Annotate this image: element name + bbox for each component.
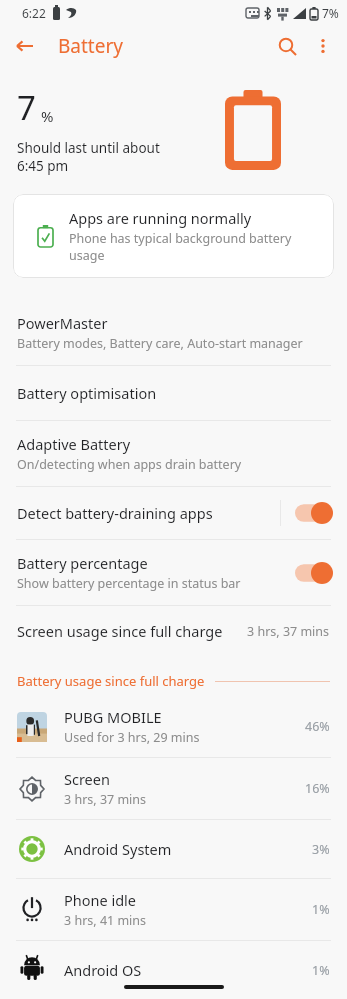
staticText: Battery usage since full charge: [17, 672, 205, 690]
staticText: Show battery percentage in status bar: [17, 575, 241, 592]
button[interactable]: More options: [305, 28, 341, 64]
button[interactable]: PowerMaster: [0, 300, 347, 365]
staticText: Battery percentage: [17, 553, 148, 573]
staticText: 1%: [312, 901, 330, 918]
button[interactable]: Android OS: [0, 941, 347, 999]
button[interactable]: Search: [269, 28, 305, 64]
staticText: Phone has typical background battery usa…: [69, 230, 326, 264]
staticText: Battery optimisation: [17, 383, 157, 403]
staticText: PUBG MOBILE: [64, 707, 162, 727]
staticText: Screen usage since full charge: [17, 621, 247, 641]
staticText: 6:45 pm: [17, 157, 69, 175]
staticText: Should last until about: [17, 139, 160, 157]
staticText: Adaptive Battery: [17, 434, 131, 454]
staticText: Phone idle: [64, 890, 136, 910]
staticText: 46%: [305, 718, 330, 735]
staticText: 7: [17, 85, 36, 130]
button[interactable]: Battery percentage: [0, 540, 347, 605]
button[interactable]: Battery optimisation: [0, 366, 347, 420]
staticText: Screen: [64, 769, 110, 789]
staticText: Apps are running normally: [69, 208, 252, 228]
staticText: Android OS: [64, 960, 142, 980]
staticText: Detect battery-draining apps: [17, 503, 213, 523]
staticText: 3 hrs, 41 mins: [64, 912, 147, 929]
button[interactable]: Back: [9, 30, 41, 62]
button[interactable]: Screen usage since full charge: [0, 606, 347, 656]
staticText: %: [41, 106, 54, 126]
button[interactable]: Toggle: [295, 502, 333, 524]
staticText: PowerMaster: [17, 313, 108, 333]
staticText: On/detecting when apps drain battery: [17, 456, 242, 473]
staticText: 6:22: [22, 5, 46, 21]
staticText: Android System: [64, 839, 172, 859]
staticText: 7%: [322, 5, 339, 21]
button[interactable]: PUBG MOBILE: [0, 696, 347, 757]
staticText: Used for 3 hrs, 29 mins: [64, 729, 200, 746]
button[interactable]: Toggle: [295, 562, 333, 584]
staticText: 16%: [305, 780, 330, 797]
staticText: Battery modes, Battery care, Auto-start …: [17, 335, 303, 352]
button[interactable]: Screen: [0, 758, 347, 819]
staticText: 3 hrs, 37 mins: [64, 791, 147, 808]
staticText: Battery: [58, 33, 123, 59]
button[interactable]: Detect battery-draining apps: [0, 487, 347, 539]
button[interactable]: Adaptive Battery: [0, 421, 347, 486]
staticText: 3%: [312, 841, 330, 858]
button[interactable]: Apps are running normally: [13, 194, 334, 278]
button[interactable]: Android System: [0, 820, 347, 878]
staticText: 1%: [312, 962, 330, 979]
staticText: 3 hrs, 37 mins: [247, 623, 330, 640]
button[interactable]: Phone idle: [0, 879, 347, 940]
